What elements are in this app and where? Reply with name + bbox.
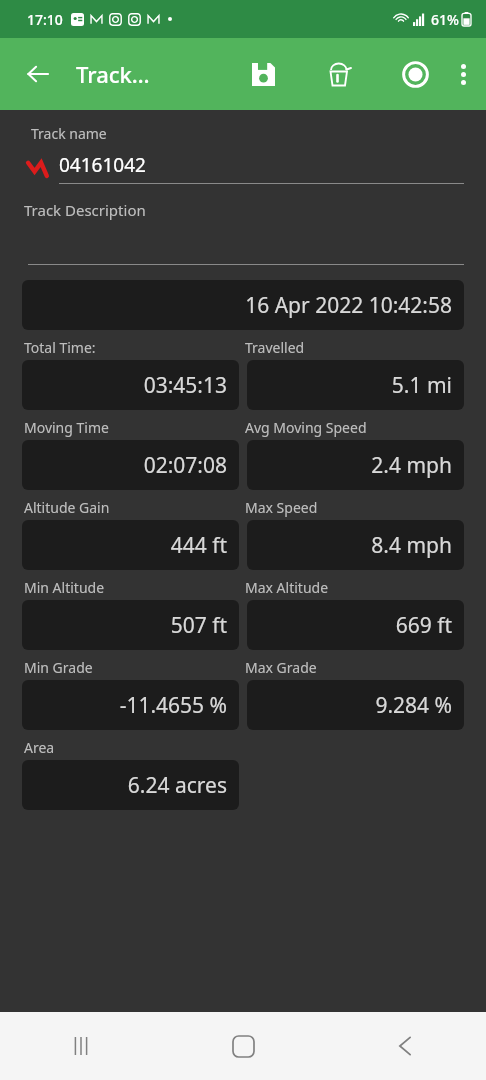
staticText: Max Altitude (245, 578, 464, 597)
staticText: Track name (31, 124, 107, 143)
button[interactable]: More options (440, 49, 486, 99)
button[interactable]: Paint (314, 49, 364, 99)
button[interactable]: Back (373, 1014, 437, 1078)
button[interactable]: -11.4655 % (22, 680, 239, 730)
button[interactable]: 02:07:08 (22, 440, 239, 490)
staticText: Track Description (24, 200, 146, 220)
staticText: Area (24, 738, 55, 757)
button[interactable]: 5.1 mi (247, 360, 464, 410)
staticText: Max Grade (245, 658, 464, 677)
button[interactable]: 6.24 acres (22, 760, 239, 810)
staticText: 17:10 (27, 10, 63, 29)
staticText: 03:45:13 (143, 371, 227, 400)
staticText: 9.284 % (375, 691, 452, 720)
button[interactable]: 2.4 mph (247, 440, 464, 490)
staticText: Total Time: (24, 338, 243, 357)
staticText: 6.24 acres (127, 771, 227, 800)
button[interactable]: Save (238, 49, 288, 99)
button[interactable]: Track… (76, 59, 150, 89)
button[interactable]: 16 Apr 2022 10:42:58 (22, 280, 464, 330)
staticText: Moving Time (24, 418, 243, 437)
staticText: 444 ft (170, 531, 227, 560)
button[interactable]: 444 ft (22, 520, 239, 570)
staticText: 16 Apr 2022 10:42:58 (245, 291, 452, 320)
button[interactable]: Record (390, 49, 440, 99)
staticText: 5.1 mi (391, 371, 452, 400)
staticText: Min Altitude (24, 578, 243, 597)
staticText: Altitude Gain (24, 498, 243, 517)
button[interactable]: 669 ft (247, 600, 464, 650)
button[interactable]: 9.284 % (247, 680, 464, 730)
staticText: Travelled (245, 338, 464, 357)
staticText: 04161042 (59, 152, 146, 178)
staticText: 507 ft (170, 611, 227, 640)
button[interactable]: Home (211, 1014, 275, 1078)
button[interactable]: 507 ft (22, 600, 239, 650)
staticText: 02:07:08 (143, 451, 227, 480)
staticText: Max Speed (245, 498, 464, 517)
staticText: 8.4 mph (371, 531, 452, 560)
staticText: 61% (431, 10, 459, 29)
staticText: 669 ft (395, 611, 452, 640)
staticText: Avg Moving Speed (245, 418, 464, 437)
staticText: -11.4655 % (119, 691, 227, 720)
staticText: 2.4 mph (371, 451, 452, 480)
button[interactable]: 8.4 mph (247, 520, 464, 570)
staticText: Min Grade (24, 658, 243, 677)
button[interactable]: Recent apps (49, 1014, 113, 1078)
button[interactable]: 03:45:13 (22, 360, 239, 410)
button[interactable]: Back (14, 50, 62, 98)
